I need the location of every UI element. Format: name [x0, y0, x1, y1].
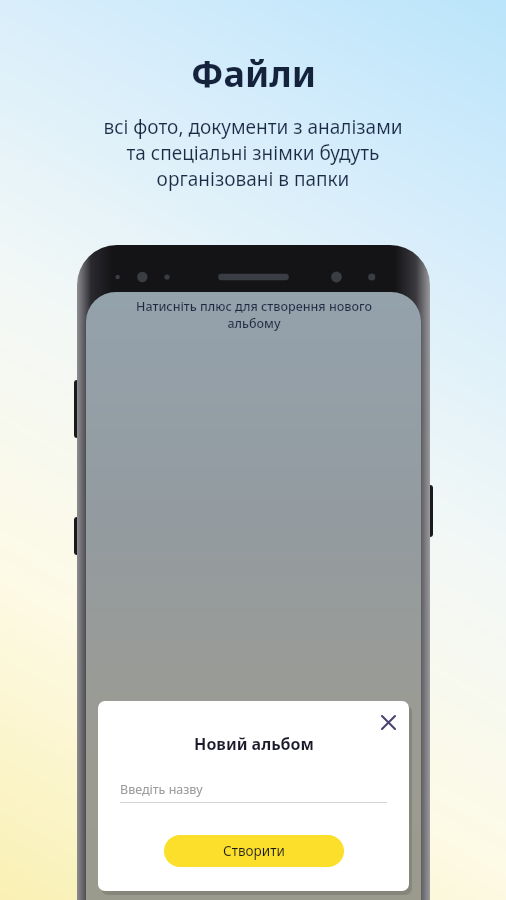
staticText: Введіть назву: [120, 781, 203, 798]
staticText: Файли: [191, 49, 316, 98]
button[interactable]: Створити: [164, 835, 344, 867]
button[interactable]: Введіть назву: [120, 776, 387, 802]
staticText: Новий альбом: [194, 733, 314, 755]
staticText: Натисніть плюс для створення нового альб…: [136, 298, 372, 332]
staticText: всі фото, документи з аналізами та спеці…: [103, 114, 403, 192]
button[interactable]: Закрити: [371, 705, 405, 739]
staticText: Створити: [223, 842, 285, 860]
